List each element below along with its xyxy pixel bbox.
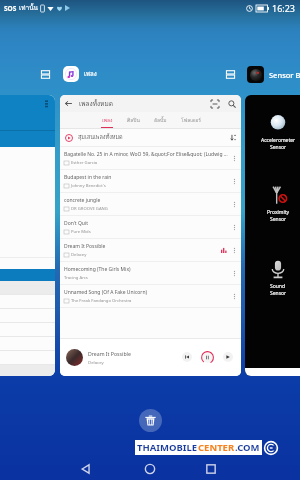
button[interactable]: สุ่มเล่นเพลงทั้งหมด <box>60 129 241 146</box>
button[interactable]: Dream It Possible <box>60 239 241 262</box>
staticText: .COM <box>235 441 260 454</box>
staticText: เพลง <box>102 116 113 124</box>
staticText: เท่านั้น <box>19 3 39 13</box>
staticText: Accelerometer <box>261 137 296 144</box>
staticText: Sensor <box>270 290 287 297</box>
staticText: ศิลปิน <box>127 116 140 124</box>
staticText: Don't Quit <box>64 220 89 227</box>
button[interactable]: Back <box>64 99 73 108</box>
button[interactable]: Bagatelle No. 25 in A minor, WoO 59, &qu… <box>60 147 241 170</box>
staticText: เพลง <box>84 69 97 79</box>
button[interactable]: Pause <box>201 351 214 364</box>
staticText: Johnny Benedict's <box>71 183 106 189</box>
staticText: Proximity <box>267 209 290 216</box>
button[interactable]: concrete jungle <box>60 193 241 216</box>
button[interactable]: Next <box>223 352 233 362</box>
button[interactable]: More options <box>231 178 238 185</box>
staticText: สุ่มเล่นเพลงทั้งหมด <box>78 133 123 142</box>
staticText: Sensor <box>270 144 287 151</box>
button[interactable]: More options <box>231 293 238 300</box>
button[interactable]: Previous <box>182 352 192 362</box>
staticText: CENTER <box>198 441 235 454</box>
button[interactable]: Recents <box>203 461 219 477</box>
button[interactable]: More options <box>231 247 238 254</box>
button[interactable]: Search <box>228 100 236 108</box>
staticText: DR GROOVE GANG <box>71 206 108 212</box>
staticText: Esther Garcia <box>71 160 98 166</box>
button[interactable]: More options <box>231 201 238 208</box>
button[interactable]: เพลง <box>101 112 113 128</box>
button[interactable]: Budapest in the rain <box>60 170 241 193</box>
staticText: SOS <box>4 4 17 13</box>
staticText: Budapest in the rain <box>64 174 112 181</box>
button[interactable]: ศิลปิน <box>127 112 140 127</box>
button[interactable]: Split screen <box>41 70 50 79</box>
staticText: Bagatelle No. 25 in A minor, WoO 59, &qu… <box>64 151 228 158</box>
staticText: อัลบั้ม <box>154 116 167 124</box>
button[interactable]: Home <box>142 461 158 477</box>
staticText: Sensor Bo <box>269 70 300 80</box>
button[interactable]: Split screen <box>226 70 235 79</box>
button[interactable]: More options <box>231 155 238 162</box>
staticText: Homecoming (The Girls Mix) <box>64 266 131 273</box>
staticText: Dream It Possible <box>64 243 106 250</box>
button[interactable]: Scan <box>211 100 219 108</box>
button[interactable]: Accelerometer <box>245 95 300 376</box>
button[interactable]: Homecoming (The Girls Mix) <box>60 262 241 285</box>
staticText: Sensor <box>270 216 287 223</box>
button[interactable]: More options <box>231 224 238 231</box>
staticText: Pure Mids <box>71 229 91 235</box>
button[interactable]: Clear all <box>139 409 162 432</box>
staticText: Sound <box>270 283 286 290</box>
staticText: เพลงทั้งหมด <box>79 99 113 109</box>
button[interactable] <box>0 95 55 376</box>
button[interactable]: Unnamed Song (Of A Fake Unicorn) <box>60 285 241 308</box>
button[interactable]: More options <box>231 270 238 277</box>
staticText: concrete jungle <box>64 197 101 204</box>
staticText: Dream It Possible <box>88 350 131 357</box>
staticText: Tracing Arcs <box>64 275 88 281</box>
staticText: Delacey <box>71 252 87 258</box>
staticText: Unnamed Song (Of A Fake Unicorn) <box>64 289 147 296</box>
staticText: 16:23 <box>272 2 296 14</box>
staticText: THAIMOBILE <box>137 441 198 454</box>
staticText: Delacey <box>88 359 104 365</box>
button[interactable]: อัลบั้ม <box>154 112 167 127</box>
button[interactable]: โฟลเดอร์ <box>181 112 201 127</box>
staticText: The Freak Fandango Orchestra <box>71 298 132 304</box>
staticText: โฟลเดอร์ <box>181 116 201 124</box>
button[interactable]: Back <box>78 461 94 477</box>
button[interactable]: Don't Quit <box>60 216 241 239</box>
